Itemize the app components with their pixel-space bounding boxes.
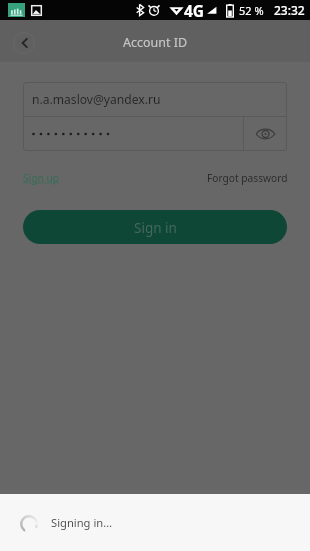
staticText: Sign in — [134, 219, 177, 237]
button[interactable]: Sign in — [23, 210, 287, 244]
staticText: n.a.maslov@yandex.ru — [32, 91, 161, 107]
button[interactable]: Forgot password — [207, 171, 288, 185]
staticText: 4G — [184, 0, 205, 20]
button[interactable]: Show password — [244, 117, 287, 151]
staticText: Signing in… — [51, 515, 113, 530]
staticText: Account ID — [123, 34, 188, 51]
button[interactable]: Back — [9, 28, 39, 58]
staticText: 52 % — [239, 3, 264, 18]
button[interactable]: Sign up — [23, 171, 59, 185]
staticText: 23:32 — [274, 2, 305, 18]
